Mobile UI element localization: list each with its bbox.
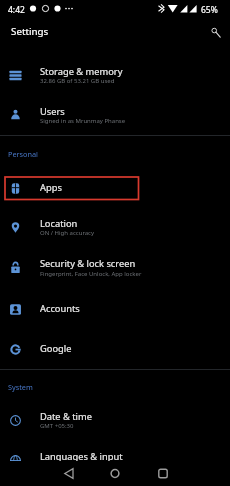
button[interactable]: Users <box>0 96 230 136</box>
staticText: 65% <box>201 4 218 16</box>
staticText: ON / High accuracy <box>40 229 95 237</box>
button[interactable]: Storage & memory <box>0 56 230 96</box>
staticText: Personal <box>8 149 38 159</box>
staticText: Fingerprint, Face Unlock, App locker <box>40 270 142 278</box>
button[interactable]: Location <box>0 208 230 248</box>
staticText: Signed in as Mrunmay Phanse <box>40 117 126 125</box>
button[interactable]: Google <box>0 329 230 369</box>
staticText: Languages & input <box>40 450 123 463</box>
button[interactable]: Recents <box>151 461 175 486</box>
staticText: Google <box>40 342 72 355</box>
button[interactable]: Date & time <box>0 401 230 441</box>
staticText: Accounts <box>40 302 80 315</box>
button[interactable]: Languages & input <box>0 442 230 482</box>
staticText: Storage & memory <box>40 65 123 78</box>
button[interactable]: Accounts <box>0 289 230 329</box>
staticText: Date & time <box>40 410 92 423</box>
staticText: Settings <box>11 25 49 38</box>
button[interactable]: Home <box>103 461 127 486</box>
button[interactable]: Apps <box>0 168 230 208</box>
staticText: Apps <box>40 181 62 194</box>
staticText: 4:42 <box>8 4 25 16</box>
staticText: GMT +05:30 <box>40 422 74 430</box>
staticText: System <box>8 382 33 392</box>
staticText: Security & lock screen <box>40 257 136 270</box>
button[interactable]: Back <box>57 461 81 486</box>
staticText: Users <box>40 105 65 118</box>
staticText: 32.86 GB of 53.21 GB used <box>40 77 115 85</box>
staticText: English (India) <box>40 463 80 471</box>
staticText: Location <box>40 217 78 230</box>
button[interactable]: Search <box>203 22 225 44</box>
button[interactable]: Security & lock screen <box>0 248 230 288</box>
